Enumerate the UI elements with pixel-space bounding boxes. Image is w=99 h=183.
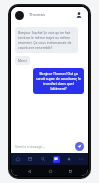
button[interactable]: Search	[37, 153, 49, 165]
staticText: Merci	[18, 58, 27, 63]
button[interactable]: Back	[25, 167, 33, 175]
button[interactable]: Send	[75, 142, 84, 151]
button[interactable]: Home	[46, 167, 54, 175]
button[interactable]: Alerts	[63, 153, 75, 165]
button[interactable]: Profile avatar	[15, 11, 24, 20]
button[interactable]: Trips	[24, 153, 36, 165]
staticText: Bonjour Sophie! Je vois qu'on fait envir…	[18, 30, 75, 50]
staticText: Thomas	[29, 12, 45, 18]
button[interactable]: Bonjour Sophie! Je vois qu'on fait envir…	[15, 27, 78, 53]
button[interactable]: Merci	[15, 56, 30, 65]
button[interactable]: Recent apps	[66, 167, 74, 175]
staticText: Send a message...	[15, 144, 46, 149]
button[interactable]: Messages	[50, 153, 62, 165]
button[interactable]: Contact info	[74, 10, 84, 20]
button[interactable]: Bonjour Thomas! Oui ça serait super de c…	[33, 68, 84, 94]
button[interactable]: Home	[12, 153, 24, 165]
button[interactable]: More	[75, 153, 87, 165]
button[interactable]: Send a message...	[15, 139, 75, 153]
staticText: Bonjour Thomas! Oui ça serait super de c…	[36, 71, 81, 91]
